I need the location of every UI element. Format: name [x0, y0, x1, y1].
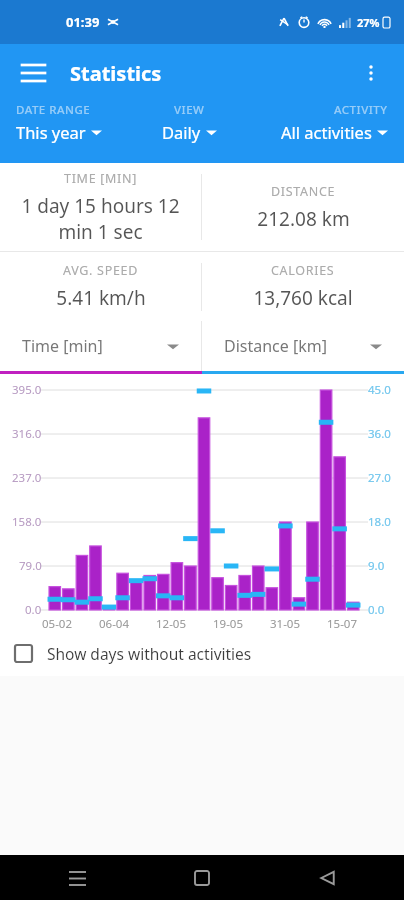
- staticText: 36.0: [368, 426, 391, 442]
- staticText: 12-05: [156, 616, 187, 632]
- staticText: Time [min]: [22, 335, 103, 357]
- staticText: 18.0: [368, 514, 391, 530]
- button[interactable]: VIEW: [137, 102, 242, 143]
- button[interactable]: ACTIVITY: [242, 102, 396, 143]
- staticText: 15-07: [327, 616, 358, 632]
- staticText: All activities: [281, 121, 372, 143]
- staticText: 9.0: [368, 558, 385, 574]
- staticText: DATE RANGE: [16, 102, 91, 118]
- staticText: 212.08 km: [257, 206, 350, 232]
- button[interactable]: More options: [354, 56, 388, 90]
- staticText: 01:39: [66, 13, 100, 31]
- staticText: 316.0: [12, 426, 42, 442]
- staticText: 79.0: [19, 558, 42, 574]
- button[interactable]: Home: [181, 857, 223, 899]
- button[interactable]: CALORIES: [202, 252, 404, 321]
- staticText: 5.41 km/h: [56, 285, 146, 311]
- staticText: 19-05: [213, 616, 244, 632]
- staticText: Distance [km]: [224, 335, 328, 357]
- button[interactable]: Distance [km]: [202, 321, 404, 371]
- staticText: ACTIVITY: [334, 102, 388, 118]
- button[interactable]: AVG. SPEED: [0, 252, 201, 321]
- button[interactable]: DISTANCE: [202, 163, 404, 251]
- staticText: TIME [MIN]: [64, 170, 138, 187]
- staticText: 06-04: [99, 616, 130, 632]
- button[interactable]: Show days without activities: [0, 630, 404, 676]
- staticText: Show days without activities: [47, 643, 252, 664]
- staticText: 0.0: [368, 602, 385, 618]
- staticText: 13,760 kcal: [253, 285, 353, 311]
- staticText: 237.0: [12, 470, 42, 486]
- staticText: CALORIES: [271, 262, 335, 279]
- button[interactable]: Back: [306, 857, 348, 899]
- staticText: 0.0: [25, 602, 42, 618]
- staticText: AVG. SPEED: [63, 262, 139, 279]
- button[interactable]: DATE RANGE: [8, 102, 137, 143]
- staticText: This year: [16, 121, 86, 143]
- button[interactable]: Time [min]: [0, 321, 201, 371]
- staticText: 45.0: [368, 382, 391, 398]
- staticText: 27.0: [368, 470, 391, 486]
- staticText: 31-05: [270, 616, 301, 632]
- staticText: 1 day 15 hours 12 min 1 sec: [21, 193, 180, 245]
- button[interactable]: TIME [MIN]: [0, 163, 201, 251]
- button[interactable]: Open navigation menu: [16, 56, 50, 90]
- staticText: Statistics: [70, 60, 162, 87]
- button[interactable]: Recent apps: [56, 857, 98, 899]
- staticText: 05-02: [42, 616, 73, 632]
- staticText: 27%: [357, 15, 380, 30]
- staticText: DISTANCE: [271, 183, 336, 200]
- staticText: 158.0: [12, 514, 42, 530]
- staticText: VIEW: [174, 102, 205, 118]
- staticText: 395.0: [12, 382, 42, 398]
- staticText: Daily: [162, 121, 201, 143]
